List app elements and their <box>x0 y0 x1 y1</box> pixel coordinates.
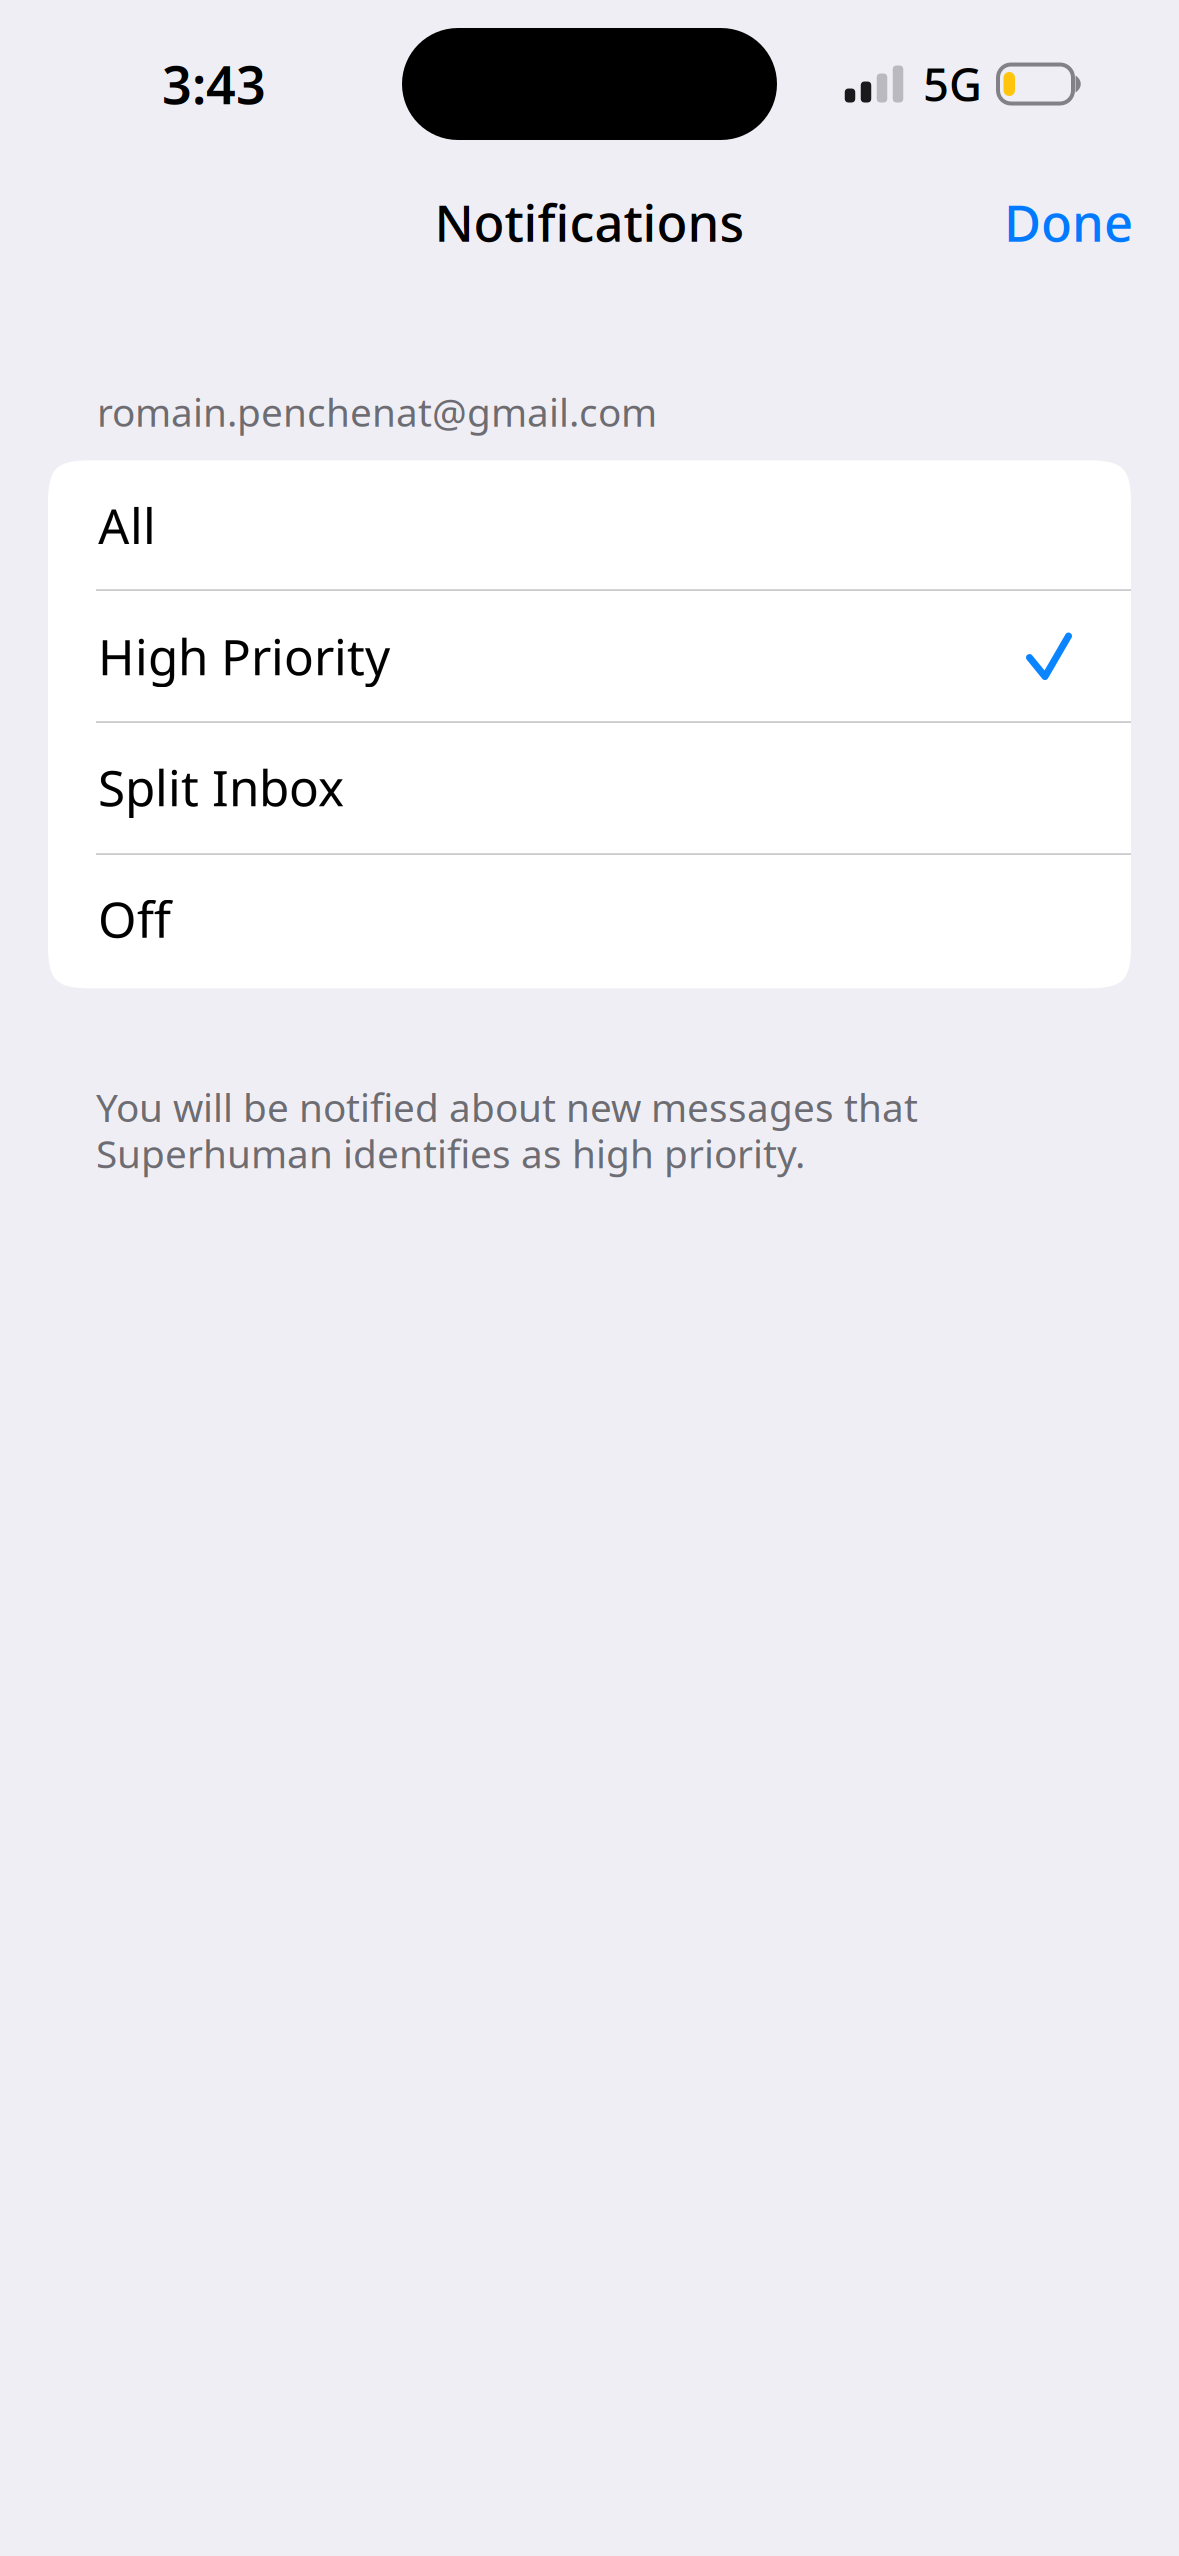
staticText: Off <box>98 886 171 951</box>
staticText: romain.penchenat@gmail.com <box>97 386 657 437</box>
button[interactable]: Split Inbox <box>48 723 1131 855</box>
staticText: 5G <box>923 54 982 114</box>
staticText: All <box>98 492 156 558</box>
staticText: Done <box>1004 188 1133 256</box>
staticText: 3:43 <box>162 49 266 119</box>
staticText: Split Inbox <box>98 754 344 820</box>
button[interactable]: High Priority <box>48 591 1131 723</box>
staticText: Notifications <box>434 188 744 256</box>
button[interactable]: Off <box>48 855 1131 988</box>
button[interactable]: Done <box>979 168 1158 276</box>
staticText: Superhuman identifies as high priority. <box>96 1128 805 1179</box>
staticText: High Priority <box>98 623 390 689</box>
staticText: You will be notified about new messages … <box>96 1081 918 1133</box>
button[interactable]: All <box>48 460 1131 591</box>
